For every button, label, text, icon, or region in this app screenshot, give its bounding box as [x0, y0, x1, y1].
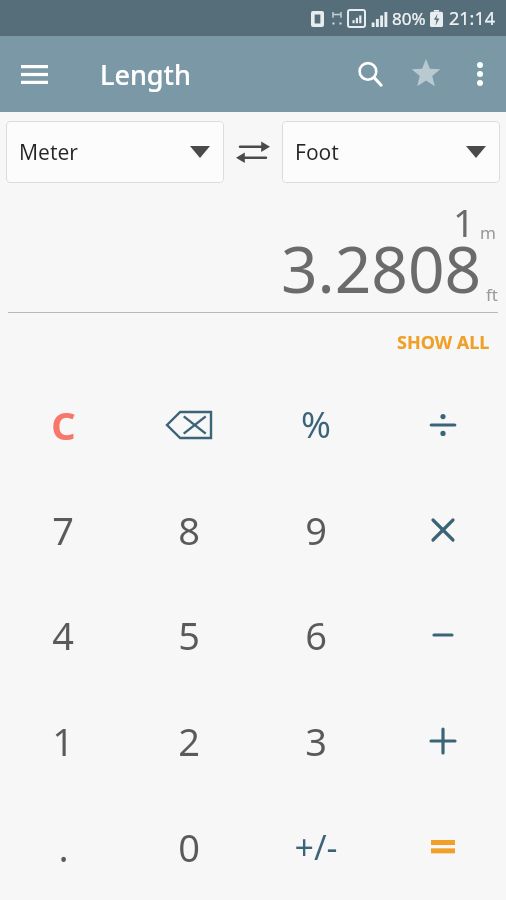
staticText: 9 — [305, 504, 327, 556]
staticText: 4 — [52, 609, 74, 661]
button[interactable]: Multiply — [379, 477, 506, 582]
button[interactable]: Search — [342, 46, 398, 102]
staticText: C — [51, 399, 76, 451]
staticText: . — [58, 821, 69, 873]
staticText: 3.2808 — [281, 225, 482, 312]
staticText: 2 — [178, 715, 200, 767]
button[interactable]: SHOW ALL — [389, 322, 498, 363]
staticText: 0 — [178, 821, 200, 873]
staticText: 1 — [453, 196, 475, 248]
button[interactable]: 1 — [0, 688, 126, 794]
button[interactable]: 6 — [252, 582, 379, 688]
button[interactable]: 0 — [126, 794, 252, 900]
staticText: +/- — [294, 824, 338, 870]
staticText: m — [480, 221, 496, 244]
button[interactable]: Favorite — [398, 46, 454, 102]
button[interactable]: More options — [454, 48, 506, 100]
button[interactable]: 2 — [126, 688, 252, 794]
staticText: % — [301, 400, 331, 449]
button[interactable]: Backspace — [126, 372, 252, 477]
staticText: 80% — [392, 7, 426, 30]
button[interactable]: Equals — [379, 794, 506, 900]
button[interactable]: 9 — [252, 477, 379, 582]
staticText: Meter — [19, 138, 78, 167]
button[interactable]: 7 — [0, 477, 126, 582]
button[interactable]: +/- — [252, 794, 379, 900]
staticText: 1 — [52, 715, 74, 767]
button[interactable]: Plus — [379, 688, 506, 794]
button[interactable]: 8 — [126, 477, 252, 582]
staticText: 3 — [305, 715, 327, 767]
staticText: 21:14 — [449, 6, 496, 31]
button[interactable]: . — [0, 794, 126, 900]
staticText: 6 — [305, 609, 327, 661]
button[interactable]: 4 — [0, 582, 126, 688]
button[interactable]: Foot — [282, 121, 500, 183]
staticText: SHOW ALL — [397, 330, 490, 355]
button[interactable]: Meter — [6, 121, 224, 183]
button[interactable]: C — [0, 372, 126, 477]
button[interactable]: Open navigation menu — [8, 48, 60, 100]
staticText: ft — [486, 283, 498, 306]
button[interactable]: Minus — [379, 582, 506, 688]
staticText: Foot — [295, 138, 339, 167]
staticText: Length — [100, 56, 191, 93]
button[interactable]: 3 — [252, 688, 379, 794]
staticText: 7 — [52, 504, 74, 556]
staticText: 5 — [178, 609, 200, 661]
button[interactable]: 5 — [126, 582, 252, 688]
staticText: 8 — [178, 504, 200, 556]
button[interactable]: Swap units — [224, 121, 282, 183]
button[interactable]: Divide — [379, 372, 506, 477]
button[interactable]: % — [252, 372, 379, 477]
